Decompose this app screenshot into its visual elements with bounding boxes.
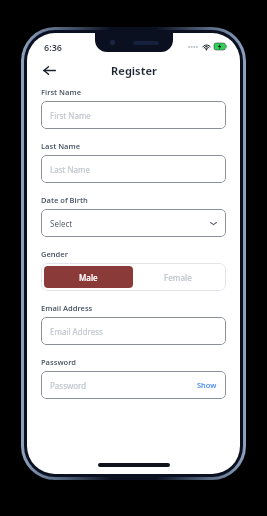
staticText: Select [50,218,73,229]
button[interactable]: Email Address [41,317,226,345]
staticText: Date of Birth [41,195,88,205]
staticText: Password [41,357,77,367]
staticText: First Name [50,110,91,121]
button[interactable]: Last Name [41,155,226,183]
button[interactable]: Back [37,58,61,82]
button[interactable]: Select [41,209,226,237]
staticText: Register [111,63,157,78]
button[interactable]: Password [41,371,226,399]
button[interactable]: Female [133,266,223,288]
button[interactable]: Male [44,266,133,288]
staticText: Last Name [50,164,91,175]
staticText: Email Address [41,303,93,313]
staticText: Gender [41,249,68,259]
button[interactable]: First Name [41,101,226,129]
staticText: 6:36 [44,41,62,53]
staticText: First Name [41,87,82,97]
staticText: Female [164,272,192,283]
staticText: Email Address [50,326,103,337]
staticText: Password [50,380,87,391]
button[interactable]: Show [197,380,217,390]
staticText: Male [79,272,98,283]
staticText: Last Name [41,141,81,151]
staticText: Show [197,380,217,390]
